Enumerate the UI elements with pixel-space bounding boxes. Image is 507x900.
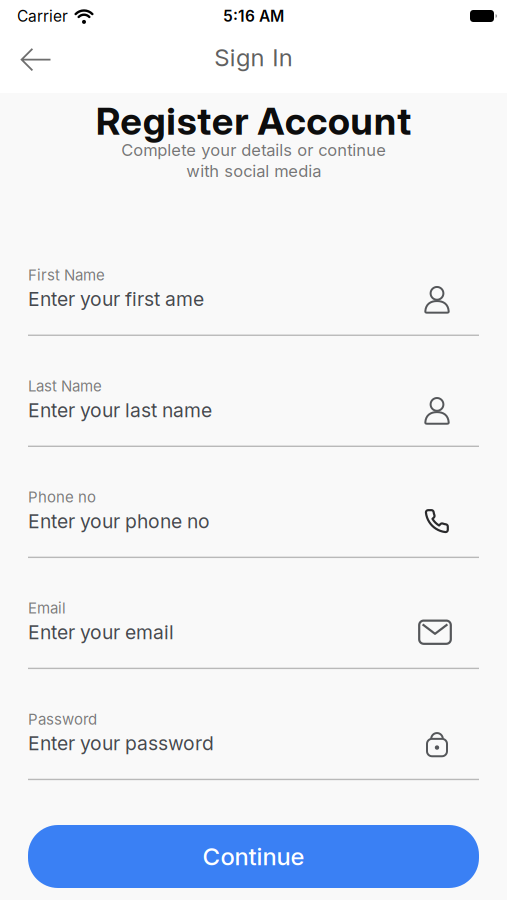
staticText: First Name <box>28 266 105 284</box>
staticText: Continue <box>202 842 304 871</box>
button[interactable]: Password <box>0 710 507 780</box>
staticText: Enter your password <box>28 732 214 755</box>
staticText: Sign In <box>214 43 293 72</box>
button[interactable]: Email <box>0 599 507 669</box>
button[interactable]: Last Name <box>0 377 507 447</box>
staticText: Email <box>28 599 66 617</box>
staticText: 5:16 AM <box>223 7 284 25</box>
staticText: Enter your phone no <box>28 509 210 533</box>
staticText: Last Name <box>28 377 102 395</box>
button[interactable] <box>20 47 52 72</box>
staticText: Register Account <box>96 98 411 144</box>
staticText: Enter your first ame <box>28 287 204 311</box>
staticText: Enter your last name <box>28 398 212 422</box>
staticText: Complete your details or continue with s… <box>121 140 386 181</box>
staticText: Enter your email <box>28 620 174 644</box>
staticText: Password <box>28 710 97 728</box>
staticText: Carrier <box>17 7 68 25</box>
staticText: Phone no <box>28 488 96 506</box>
button[interactable]: First Name <box>0 266 507 336</box>
button[interactable]: Phone no <box>0 488 507 558</box>
button[interactable]: Continue <box>0 825 507 888</box>
